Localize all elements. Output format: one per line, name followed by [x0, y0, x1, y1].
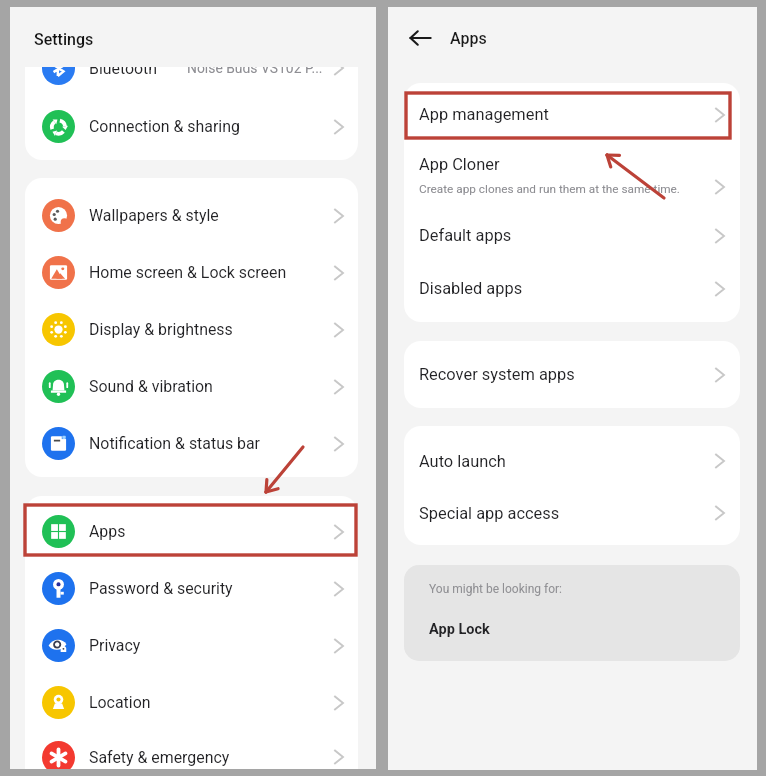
button[interactable]: Notification & status bar: [25, 415, 358, 472]
button[interactable]: Home screen & Lock screen: [25, 244, 358, 301]
staticText: App Cloner: [419, 155, 500, 174]
staticText: Connection & sharing: [89, 117, 240, 136]
button[interactable]: Wallpapers & style: [25, 187, 358, 244]
staticText: App Lock: [429, 621, 490, 638]
button[interactable]: Back: [406, 24, 434, 52]
button[interactable]: Default apps: [404, 209, 740, 262]
staticText: Wallpapers & style: [89, 206, 219, 225]
button[interactable]: Sound & vibration: [25, 358, 358, 415]
button[interactable]: You might be looking for:: [404, 565, 740, 661]
staticText: Notification & status bar: [89, 434, 260, 453]
staticText: Sound & vibration: [89, 377, 213, 396]
staticText: Recover system apps: [419, 365, 575, 384]
staticText: Apps: [450, 29, 487, 48]
button[interactable]: Special app access: [404, 486, 740, 540]
button[interactable]: App Cloner: [404, 155, 740, 218]
staticText: Settings: [34, 30, 94, 49]
staticText: Privacy: [89, 636, 141, 655]
staticText: Password & security: [89, 579, 233, 598]
staticText: Special app access: [419, 504, 560, 523]
staticText: Noise Buds VS102 P...: [187, 67, 323, 76]
staticText: Create app clones and run them at the sa…: [419, 182, 680, 196]
button[interactable]: Location: [25, 674, 358, 731]
button[interactable]: Apps: [25, 503, 358, 560]
staticText: Location: [89, 693, 151, 712]
button[interactable]: Privacy: [25, 617, 358, 674]
button[interactable]: Disabled apps: [404, 262, 740, 315]
button[interactable]: Auto launch: [404, 434, 740, 488]
staticText: Home screen & Lock screen: [89, 263, 287, 282]
staticText: Disabled apps: [419, 279, 523, 298]
staticText: Bluetooth: [89, 67, 158, 78]
staticText: Display & brightness: [89, 320, 233, 339]
button[interactable]: App management: [404, 90, 740, 139]
button[interactable]: Safety & emergency: [25, 731, 358, 769]
staticText: Default apps: [419, 226, 512, 245]
staticText: You might be looking for:: [429, 582, 562, 596]
staticText: Apps: [89, 522, 126, 541]
staticText: Auto launch: [419, 452, 506, 471]
button[interactable]: Bluetooth: [25, 67, 358, 97]
button[interactable]: Connection & sharing: [25, 98, 358, 155]
staticText: App management: [419, 105, 549, 124]
button[interactable]: Recover system apps: [404, 341, 740, 408]
staticText: Safety & emergency: [89, 748, 230, 767]
button[interactable]: Password & security: [25, 560, 358, 617]
button[interactable]: Display & brightness: [25, 301, 358, 358]
